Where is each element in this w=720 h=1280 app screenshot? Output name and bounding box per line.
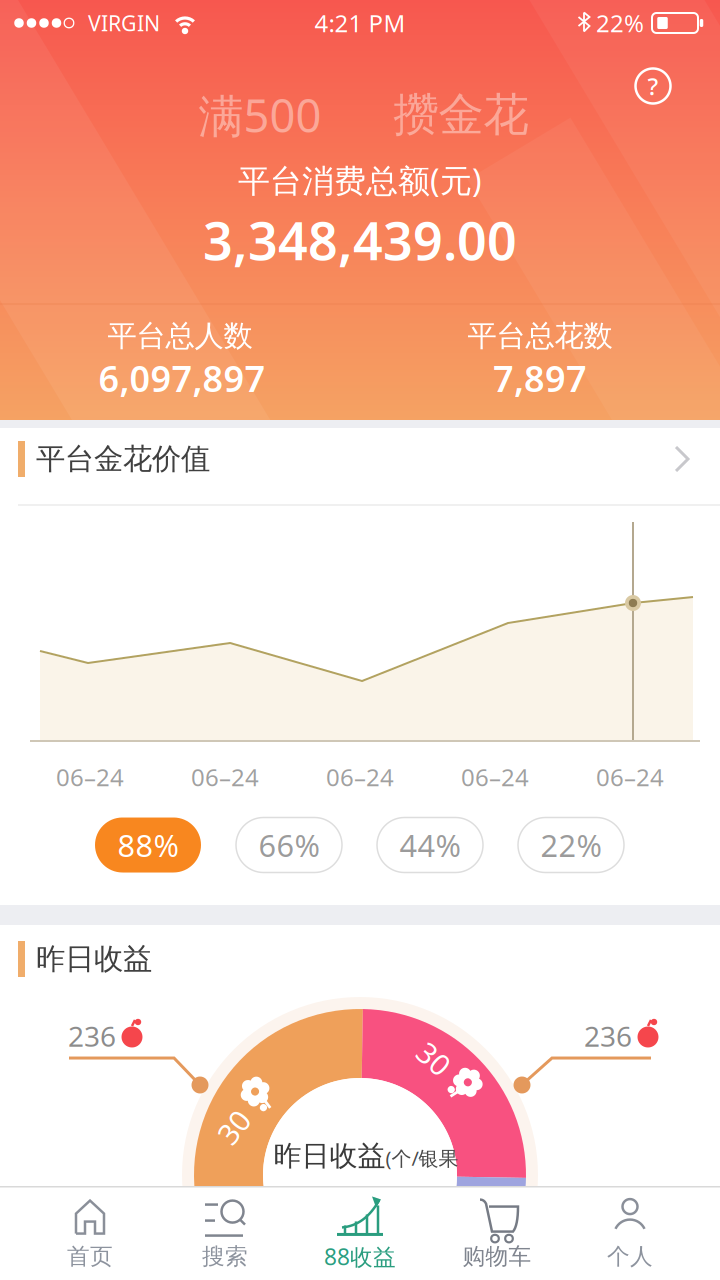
- staticText: 236: [68, 1017, 116, 1055]
- staticText: 3,348,439.00: [203, 205, 517, 275]
- staticText: 平台消费总额(元): [238, 159, 482, 201]
- button[interactable]: 平台金花价值: [0, 428, 720, 490]
- staticText: 7,897: [493, 354, 587, 402]
- staticText: 4:21 PM: [314, 7, 405, 39]
- staticText: 昨日收益: [273, 1139, 385, 1173]
- staticText: 66%: [258, 825, 319, 865]
- staticText: 搜索: [202, 1243, 248, 1270]
- staticText: 236: [584, 1017, 632, 1055]
- button[interactable]: 首页: [23, 1187, 157, 1279]
- staticText: 个人: [607, 1243, 653, 1270]
- button[interactable]: 88%: [95, 817, 201, 872]
- staticText: 06–24: [461, 761, 529, 793]
- staticText: 满500: [198, 85, 321, 145]
- staticText: 06–24: [56, 761, 124, 793]
- staticText: VIRGIN: [88, 9, 160, 37]
- button[interactable]: Help: [631, 64, 675, 108]
- staticText: (个/银果: [385, 1145, 458, 1171]
- staticText: 44%: [399, 825, 460, 865]
- button[interactable]: 个人: [563, 1187, 697, 1279]
- staticText: 88收益: [324, 1241, 396, 1271]
- staticText: 昨日收益: [36, 941, 152, 977]
- staticText: 攒金花: [393, 87, 528, 143]
- staticText: 平台总花数: [467, 318, 612, 354]
- staticText: 首页: [67, 1243, 113, 1270]
- staticText: 06–24: [191, 761, 259, 793]
- staticText: 06–24: [596, 761, 664, 793]
- button[interactable]: 22%: [518, 817, 624, 872]
- button[interactable]: 44%: [377, 817, 483, 872]
- staticText: 88%: [117, 825, 178, 865]
- staticText: 30: [208, 1090, 242, 1129]
- staticText: 平台金花价值: [36, 441, 210, 477]
- staticText: 06–24: [326, 761, 394, 793]
- staticText: 22%: [596, 7, 644, 39]
- button[interactable]: 搜索: [158, 1187, 292, 1279]
- button[interactable]: 66%: [236, 817, 342, 872]
- staticText: 购物车: [462, 1243, 531, 1270]
- staticText: 30: [411, 1053, 445, 1092]
- staticText: 22%: [540, 825, 601, 865]
- button[interactable]: 88收益: [293, 1187, 427, 1279]
- button[interactable]: 购物车: [430, 1187, 564, 1279]
- staticText: 6,097,897: [98, 354, 265, 402]
- staticText: 平台总人数: [107, 318, 252, 354]
- staticText: ?: [647, 70, 658, 102]
